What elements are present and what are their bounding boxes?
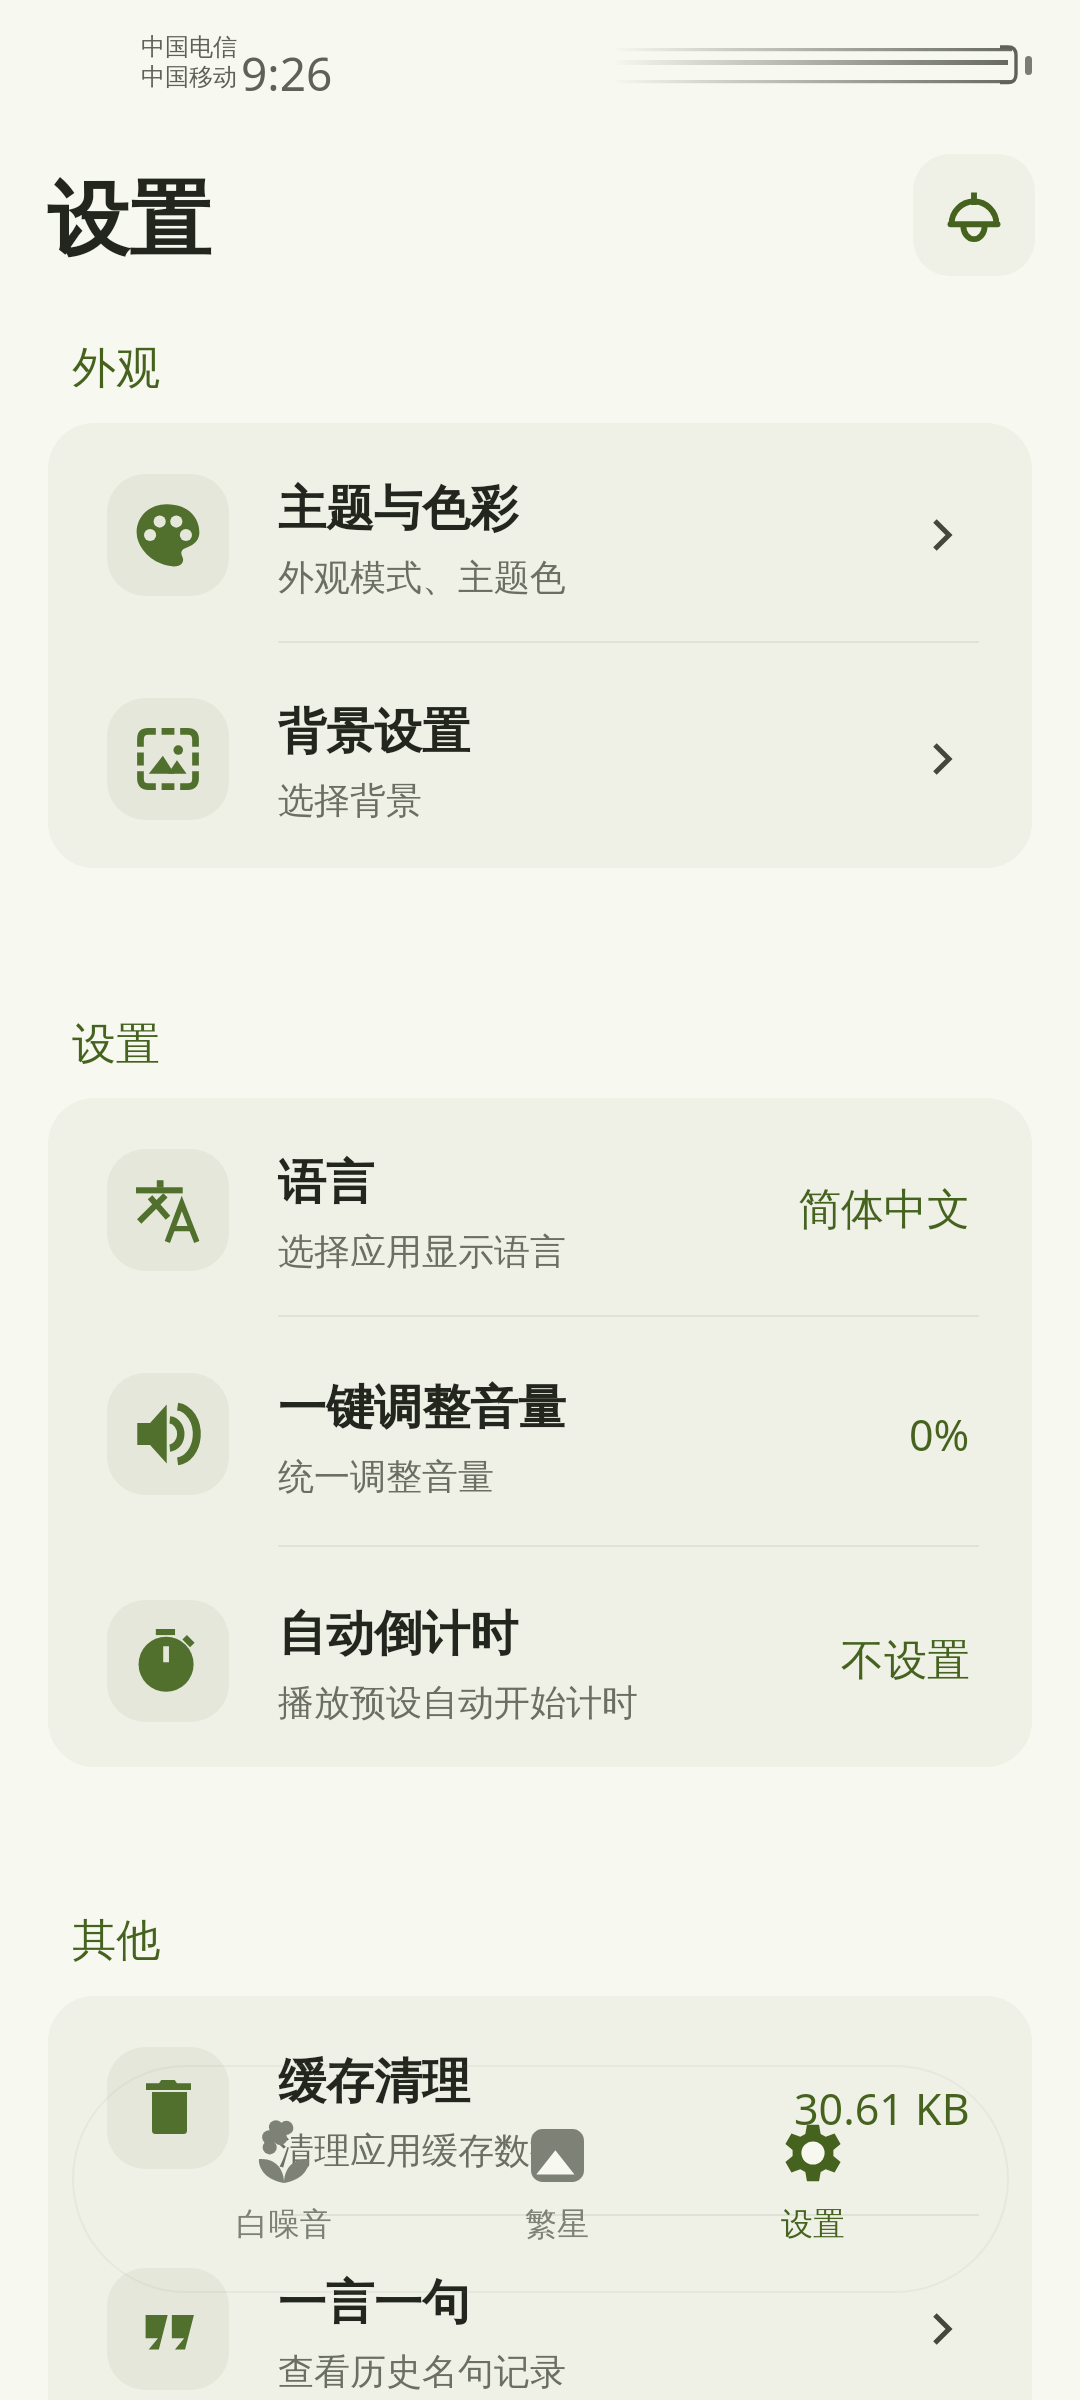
staticText: 清理应用缓存数据 (278, 2128, 566, 2173)
button[interactable]: Settings (718, 2100, 908, 2265)
staticText: 繁星 (462, 2204, 652, 2244)
staticText: 外观模式、主题色 (278, 555, 566, 600)
staticText: 设置 (72, 1017, 160, 1072)
button[interactable]: 一言一句 (48, 2216, 1032, 2400)
staticText: 选择背景 (278, 778, 422, 823)
staticText: 设置 (47, 169, 211, 272)
staticText: 语言 (278, 1153, 374, 1213)
staticText: 设置 (718, 2204, 908, 2244)
button[interactable]: 背景设置 (48, 643, 1032, 868)
staticText: 查看历史名句记录 (278, 2349, 566, 2394)
staticText: 一键调整音量 (278, 1378, 566, 1438)
staticText: 选择应用显示语言 (278, 1229, 566, 1274)
staticText: 30.61 KB (794, 2079, 970, 2138)
staticText: 白噪音 (189, 2204, 379, 2244)
staticText: 简体中文 (798, 1183, 970, 1237)
staticText: 自动倒计时 (278, 1604, 518, 1664)
staticText: 0% (909, 1405, 970, 1464)
staticText: 缓存清理 (278, 2052, 470, 2112)
staticText: 9:26 (241, 42, 333, 105)
other: Settings (784, 2124, 842, 2183)
other: White noise (258, 2120, 310, 2183)
staticText: 外观 (72, 341, 160, 396)
other: Stars (531, 2129, 584, 2182)
staticText: 统一调整音量 (278, 1454, 494, 1499)
button[interactable]: 主题与色彩 (48, 423, 1032, 641)
button[interactable]: 语言 (48, 1098, 1032, 1315)
staticText: 播放预设自动开始计时 (278, 1680, 638, 1725)
staticText: 不设置 (841, 1634, 970, 1688)
button[interactable]: White noise (189, 2100, 379, 2265)
button[interactable]: Stars (462, 2100, 652, 2265)
button[interactable]: 自动倒计时 (48, 1547, 1032, 1767)
staticText: 中国移动 (141, 62, 237, 92)
staticText: 其他 (72, 1913, 160, 1968)
staticText: 主题与色彩 (278, 479, 518, 539)
staticText: 一言一句 (278, 2273, 470, 2333)
staticText: 背景设置 (278, 702, 470, 762)
staticText: 中国电信 (141, 32, 237, 62)
button[interactable]: Night light (913, 154, 1035, 276)
button[interactable]: 缓存清理 (48, 1996, 1032, 2214)
button[interactable]: 一键调整音量 (48, 1317, 1032, 1545)
